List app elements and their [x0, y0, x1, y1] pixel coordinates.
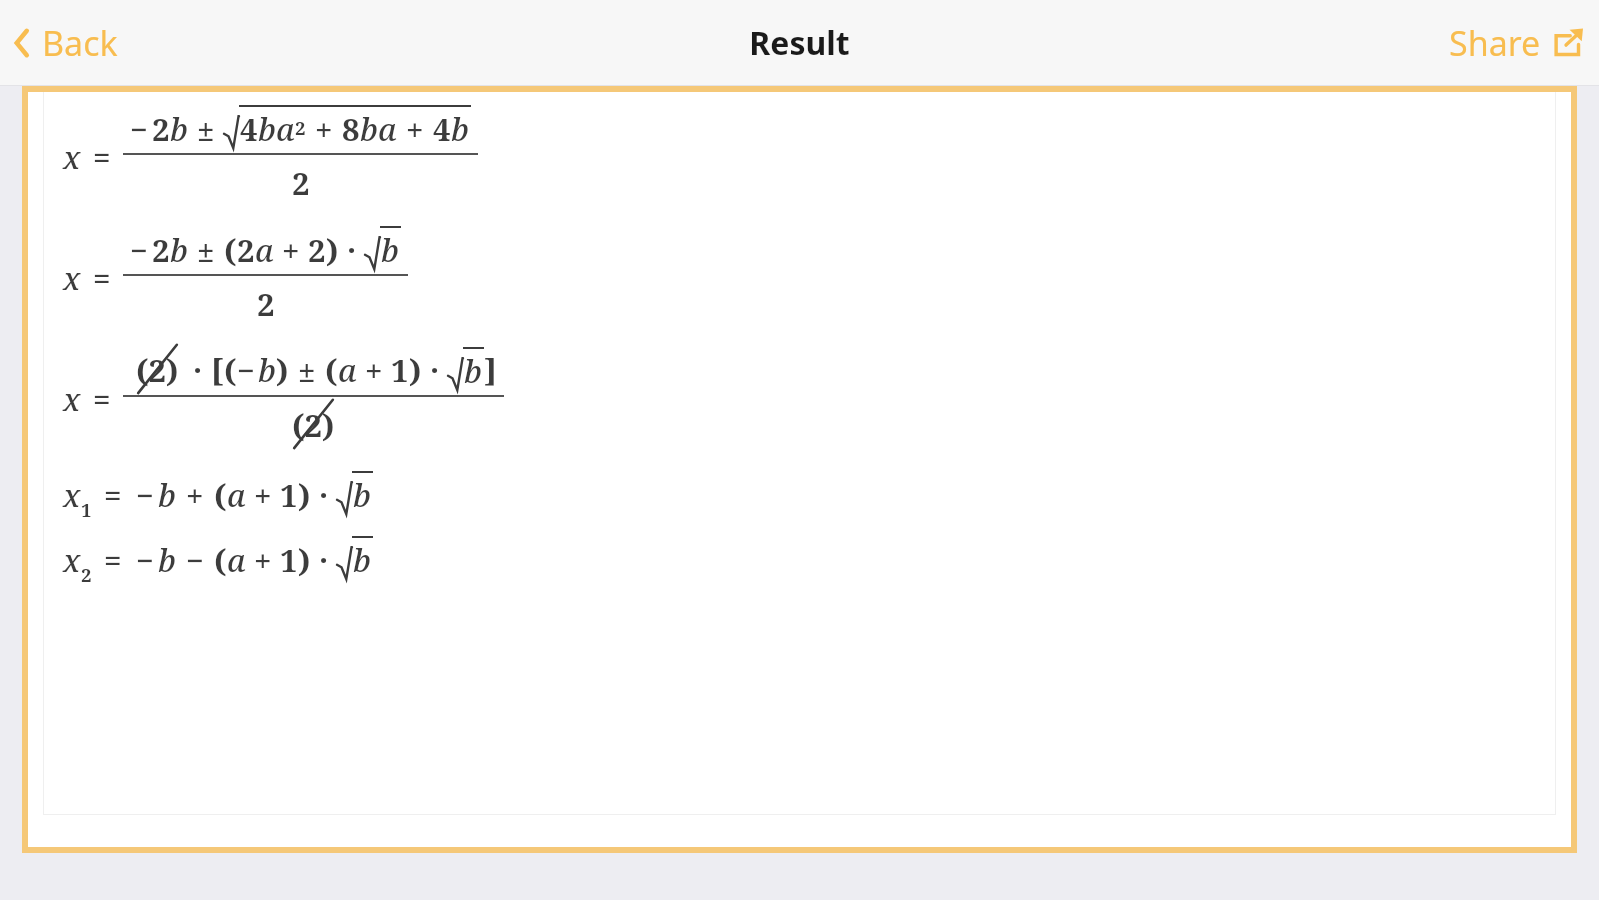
- staticText: b: [170, 108, 188, 150]
- staticText: +: [186, 474, 204, 516]
- staticText: 2: [308, 229, 326, 271]
- staticText: ): [276, 349, 289, 391]
- staticText: 2: [257, 283, 275, 325]
- staticText: [: [211, 349, 224, 391]
- staticText: Result: [749, 21, 850, 65]
- staticText: x: [63, 474, 81, 516]
- staticText: x: [63, 257, 81, 299]
- staticText: 2: [237, 229, 255, 271]
- staticText: b: [381, 229, 399, 271]
- staticText: b: [158, 474, 176, 516]
- staticText: +: [254, 539, 272, 581]
- staticText: 2: [152, 108, 170, 150]
- staticText: b: [158, 539, 176, 581]
- staticText: ba: [258, 108, 295, 150]
- staticText: 2: [295, 115, 306, 140]
- staticText: b: [451, 108, 469, 150]
- staticText: a: [338, 349, 357, 391]
- staticText: 2: [81, 562, 92, 587]
- staticText: +: [365, 349, 383, 391]
- staticText: 8: [342, 108, 360, 150]
- staticText: −: [237, 349, 255, 391]
- staticText: −: [136, 474, 154, 516]
- staticText: (2): [136, 349, 179, 391]
- button[interactable]: Share: [1429, 10, 1599, 76]
- staticText: b: [170, 229, 188, 271]
- staticText: −: [130, 229, 148, 271]
- staticText: b: [353, 539, 371, 581]
- staticText: (2): [292, 404, 335, 446]
- staticText: ±: [197, 229, 215, 271]
- staticText: ): [326, 229, 339, 271]
- staticText: +: [406, 108, 424, 150]
- staticText: a: [255, 229, 274, 271]
- staticText: 1: [391, 349, 409, 391]
- staticText: +: [282, 229, 300, 271]
- staticText: ·: [319, 539, 329, 581]
- staticText: x: [63, 539, 81, 581]
- staticText: ba: [360, 108, 397, 150]
- staticText: 1: [280, 539, 298, 581]
- staticText: −: [136, 539, 154, 581]
- staticText: a: [227, 539, 246, 581]
- staticText: ): [409, 349, 422, 391]
- staticText: b: [258, 349, 276, 391]
- staticText: +: [254, 474, 272, 516]
- staticText: a: [227, 474, 246, 516]
- staticText: Share: [1449, 20, 1541, 66]
- staticText: =: [104, 474, 122, 516]
- staticText: ·: [430, 349, 440, 391]
- staticText: ): [298, 474, 311, 516]
- button[interactable]: Back: [0, 10, 138, 76]
- staticText: 2: [292, 162, 310, 204]
- staticText: x: [63, 136, 81, 178]
- staticText: Back: [42, 20, 118, 66]
- staticText: b: [464, 350, 482, 392]
- staticText: ): [298, 539, 311, 581]
- staticText: −: [130, 108, 148, 150]
- staticText: 4: [240, 108, 258, 150]
- staticText: ·: [193, 349, 203, 391]
- staticText: ±: [197, 108, 215, 150]
- staticText: ]: [484, 349, 497, 391]
- staticText: =: [93, 257, 111, 299]
- staticText: 2: [152, 229, 170, 271]
- staticText: +: [315, 108, 333, 150]
- staticText: (: [214, 474, 227, 516]
- staticText: =: [93, 378, 111, 420]
- staticText: (: [325, 349, 338, 391]
- staticText: x: [63, 378, 81, 420]
- staticText: (: [224, 229, 237, 271]
- staticText: (: [224, 349, 237, 391]
- staticText: 1: [280, 474, 298, 516]
- staticText: b: [353, 474, 371, 516]
- staticText: −: [186, 539, 204, 581]
- staticText: ±: [298, 349, 316, 391]
- staticText: 4: [433, 108, 451, 150]
- staticText: ·: [319, 474, 329, 516]
- staticText: =: [93, 136, 111, 178]
- staticText: (: [214, 539, 227, 581]
- staticText: ·: [347, 229, 357, 271]
- staticText: =: [104, 539, 122, 581]
- staticText: 1: [81, 497, 92, 522]
